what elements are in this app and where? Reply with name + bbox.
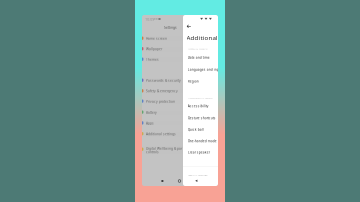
staticText: SPECIAL FEATURES <box>188 173 207 177</box>
staticText: Accessibility <box>188 104 209 108</box>
staticText: Additional settings <box>146 132 176 136</box>
staticText: Passwords & security <box>146 78 181 83</box>
staticText: Safety & emergency <box>146 89 178 93</box>
button[interactable]: Back <box>183 22 194 31</box>
staticText: Themes <box>146 57 159 62</box>
button[interactable]: Accessibility <box>183 104 218 108</box>
staticText: Settings <box>164 24 177 30</box>
staticText: ADDITIONAL TOOLS <box>188 96 212 100</box>
staticText: Gesture shortcuts <box>188 116 216 120</box>
button[interactable]: Region <box>183 79 218 84</box>
staticText: Privacy protection <box>146 99 175 104</box>
button[interactable]: Languages and input <box>183 67 218 72</box>
staticText: Region <box>188 79 199 83</box>
button[interactable]: One-handed mode <box>183 139 218 143</box>
staticText: Quick ball <box>188 127 204 132</box>
button[interactable]: Battery <box>142 110 218 115</box>
button[interactable]: Date and time <box>183 56 218 60</box>
staticText: Battery <box>146 110 157 115</box>
button[interactable]: Safety & emergency <box>142 89 218 93</box>
button[interactable]: Apps <box>142 121 218 126</box>
button[interactable]: Clear speaker <box>183 150 218 155</box>
staticText: Wallpaper <box>146 47 162 51</box>
staticText: 10:09 <box>145 17 154 22</box>
button[interactable]: Quick ball <box>183 127 218 132</box>
button[interactable]: Additional settings <box>142 132 218 136</box>
staticText: SYSTEM & DEVICE <box>188 47 207 50</box>
button[interactable]: Wallpaper <box>142 47 218 51</box>
button[interactable]: Themes <box>142 57 218 62</box>
staticText: Clear speaker <box>188 150 210 154</box>
staticText: Additional settings <box>187 33 243 42</box>
staticText: Digital Wellbeing & par <box>146 146 182 151</box>
staticText: Date and time <box>188 55 210 60</box>
staticText: Apps <box>146 121 154 125</box>
button[interactable]: Gesture shortcuts <box>183 116 218 120</box>
staticText: controls <box>146 150 159 154</box>
button[interactable]: Digital Wellbeing & par <box>142 146 218 154</box>
staticText: Home screen <box>146 36 167 41</box>
button[interactable]: Passwords & security <box>142 78 218 83</box>
button[interactable]: Privacy protection <box>142 99 218 104</box>
staticText: One-handed mode <box>188 139 217 143</box>
staticText: Languages and input <box>188 67 222 72</box>
button[interactable]: Home screen <box>142 36 218 41</box>
